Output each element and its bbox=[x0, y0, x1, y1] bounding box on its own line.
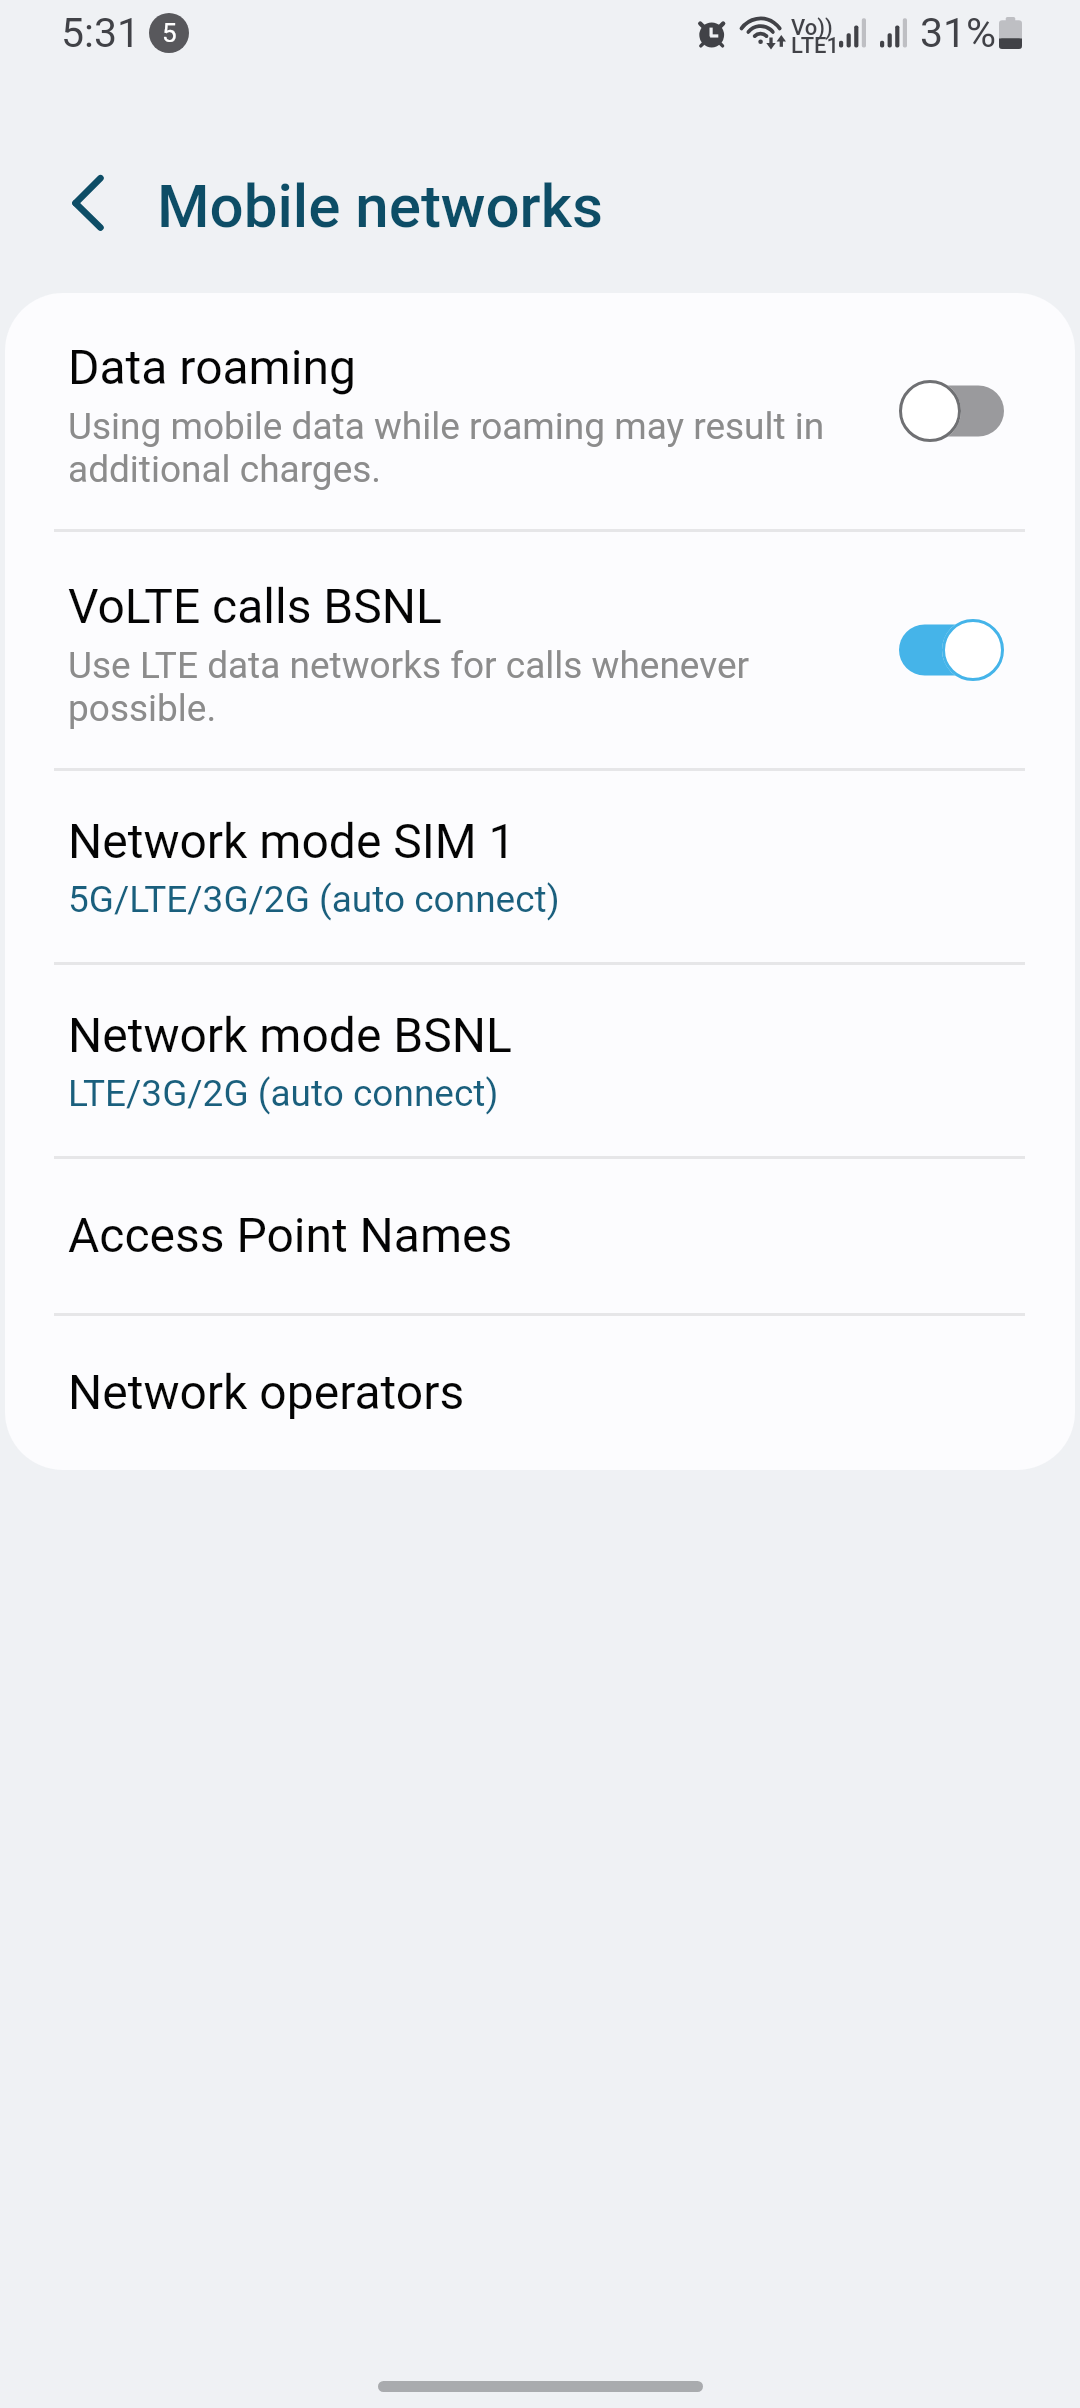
staticText: Using mobile data while roaming may resu… bbox=[68, 405, 859, 491]
button[interactable]: Network operators bbox=[5, 1316, 1075, 1470]
staticText: 5:31 bbox=[61, 9, 141, 57]
staticText: VoLTE calls BSNL bbox=[68, 579, 442, 635]
staticText: LTE1 bbox=[791, 33, 835, 59]
staticText: Data roaming bbox=[68, 340, 356, 396]
staticText: 5G/LTE/3G/2G (auto connect) bbox=[68, 877, 560, 921]
staticText: Network mode SIM 1 bbox=[68, 814, 516, 870]
staticText: 31% bbox=[920, 9, 997, 57]
staticText: Access Point Names bbox=[68, 1208, 513, 1264]
staticText: Network operators bbox=[68, 1365, 465, 1421]
staticText: LTE/3G/2G (auto connect) bbox=[68, 1071, 499, 1115]
staticText: Network mode BSNL bbox=[68, 1008, 512, 1064]
staticText: Vo)) bbox=[791, 15, 833, 41]
button[interactable]: Back bbox=[39, 171, 113, 245]
staticText: Mobile networks bbox=[157, 171, 604, 241]
button[interactable]: Data roaming bbox=[5, 293, 1075, 529]
button[interactable]: Network mode BSNL bbox=[5, 965, 1075, 1156]
staticText: 5 bbox=[162, 18, 177, 48]
button[interactable]: VoLTE calls BSNL bbox=[5, 532, 1075, 768]
staticText: Use LTE data networks for calls whenever… bbox=[68, 644, 859, 730]
button[interactable]: Network mode SIM 1 bbox=[5, 771, 1075, 962]
button[interactable]: Access Point Names bbox=[5, 1159, 1075, 1313]
button[interactable]: On bbox=[899, 619, 1004, 681]
button[interactable]: Off bbox=[899, 380, 1004, 442]
